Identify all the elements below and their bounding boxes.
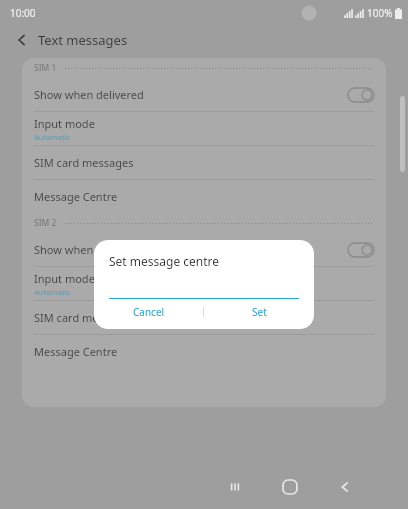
button[interactable]: Input mode	[22, 112, 386, 145]
staticText: Automatic	[34, 132, 71, 142]
staticText: Set message centre	[109, 253, 220, 269]
staticText: Show when delivered	[34, 242, 348, 257]
button[interactable]: Show when delivered	[22, 78, 386, 111]
staticText: 100%	[367, 6, 393, 20]
staticText: SIM card messages	[34, 155, 134, 170]
staticText: SIM card messages	[34, 310, 134, 325]
staticText: Message Centre	[34, 344, 118, 359]
button[interactable]: SIM card messages	[22, 146, 386, 179]
staticText: Message Centre	[34, 189, 118, 204]
staticText: Show when delivered	[34, 87, 348, 102]
staticText: 10:00	[10, 6, 36, 20]
button[interactable]: Back	[12, 30, 32, 50]
button[interactable]: Set	[204, 299, 314, 325]
button[interactable]: Input mode	[22, 267, 386, 300]
button[interactable]: Message Centre	[22, 335, 386, 368]
button[interactable]: Message Centre	[22, 180, 386, 213]
staticText: SIM 2	[34, 217, 57, 229]
button[interactable]: Show when delivered	[22, 233, 386, 266]
staticText: Set	[252, 305, 267, 319]
staticText: SIM 1	[34, 62, 57, 74]
button[interactable]: Back	[325, 467, 365, 507]
button[interactable]: Cancel	[94, 299, 203, 325]
button[interactable]: Recents	[215, 467, 255, 507]
staticText: Cancel	[133, 305, 165, 319]
button[interactable]: Home	[270, 467, 310, 507]
button[interactable]: SIM card messages	[22, 301, 386, 334]
staticText: Text messages	[38, 31, 128, 49]
staticText: Input mode	[34, 271, 95, 286]
staticText: Input mode	[34, 116, 95, 131]
staticText: Automatic	[34, 287, 71, 297]
